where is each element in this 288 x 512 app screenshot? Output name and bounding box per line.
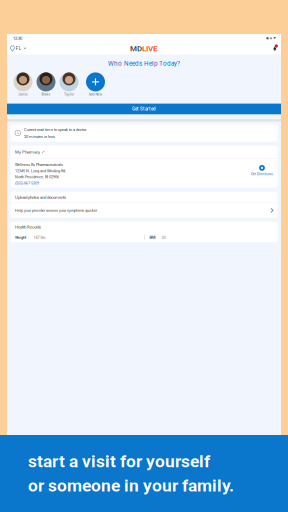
button[interactable]: Help your provider assess your symptoms … <box>10 203 277 218</box>
staticText: Taylor <box>64 92 74 96</box>
button[interactable]: Get Directions <box>251 162 273 176</box>
staticText: 12345 N. Long and Winding Rd. <box>15 169 66 173</box>
staticText: Help your provider assess your symptoms … <box>15 208 97 213</box>
staticText: MD <box>130 44 142 53</box>
button[interactable]: Edit my pharmacy <box>10 146 277 158</box>
staticText: Who Needs Help Today? <box>108 60 180 67</box>
staticText: Wellness Rx Pharmaceuticals <box>15 162 63 167</box>
staticText: North Providence, RI 02906 <box>15 175 59 179</box>
staticText: Jamie <box>18 92 28 96</box>
staticText: or someone in your family. <box>28 475 234 496</box>
staticText: 147 lbs <box>33 235 45 240</box>
staticText: 20 minutes or less <box>24 134 55 139</box>
staticText: 12:30 <box>13 36 22 41</box>
staticText: start a visit for yourself <box>28 451 210 471</box>
button[interactable]: Notifications <box>273 46 276 51</box>
staticText: 23 <box>161 235 165 240</box>
staticText: Weight <box>15 235 26 240</box>
button[interactable]: Add a new family member <box>80 72 110 96</box>
staticText: Current wait time to speak to a doctor: <box>24 127 87 132</box>
staticText: Upload photos and documents <box>15 195 66 200</box>
button[interactable]: Change state, currently Florida <box>10 46 26 51</box>
button[interactable]: MDLIVE home <box>130 44 158 53</box>
staticText: FL <box>16 46 21 51</box>
staticText: Get Directions <box>251 172 273 176</box>
staticText: LIVE <box>142 44 158 53</box>
staticText: Get Started <box>132 106 156 112</box>
staticText: BMI <box>149 235 155 240</box>
staticText: My Pharmacy <box>15 150 40 155</box>
staticText: (555) 867-5309 <box>15 181 39 185</box>
button[interactable]: Get Started <box>7 104 281 114</box>
staticText: Health Records <box>15 225 41 230</box>
button[interactable]: (555) 867-5309 <box>15 181 39 185</box>
staticText: Add New <box>88 92 102 96</box>
button[interactable]: Taylor <box>57 72 80 96</box>
button[interactable]: Jamie <box>11 72 34 96</box>
staticText: Blake <box>41 92 50 96</box>
button[interactable]: Blake <box>34 72 57 96</box>
